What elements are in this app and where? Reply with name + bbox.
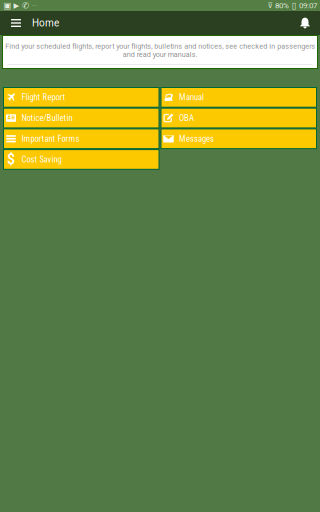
staticText: ⊽: [267, 1, 272, 10]
button[interactable]: Notifications: [290, 11, 320, 35]
button[interactable]: Notice/Bulletin: [3, 108, 159, 128]
staticText: $: [7, 151, 15, 168]
button[interactable]: Manual: [160, 87, 317, 108]
staticText: Cost Saving: [21, 154, 61, 165]
staticText: ▶: [13, 1, 19, 10]
staticText: ▯: [291, 0, 296, 11]
button[interactable]: Flight Report: [3, 87, 159, 108]
button[interactable]: Messages: [160, 128, 317, 149]
button[interactable]: $: [3, 149, 159, 170]
staticText: Home: [32, 17, 59, 29]
staticText: ✆: [22, 0, 29, 11]
staticText: Manual: [179, 92, 204, 102]
staticText: Find your scheduled flights, report your…: [5, 42, 315, 59]
staticText: Flight Report: [21, 92, 65, 102]
staticText: OBA: [179, 113, 194, 123]
staticText: 80%: [275, 1, 289, 10]
button[interactable]: Menu: [0, 11, 32, 35]
staticText: Important Forms: [21, 134, 79, 144]
staticText: 09:07: [299, 1, 317, 10]
staticText: Notice/Bulletin: [21, 113, 72, 123]
button[interactable]: Important Forms: [3, 128, 159, 149]
staticText: ▣: [3, 0, 11, 11]
staticText: Messages: [179, 134, 214, 144]
button[interactable]: OBA: [160, 108, 317, 128]
staticText: ···: [31, 1, 37, 10]
